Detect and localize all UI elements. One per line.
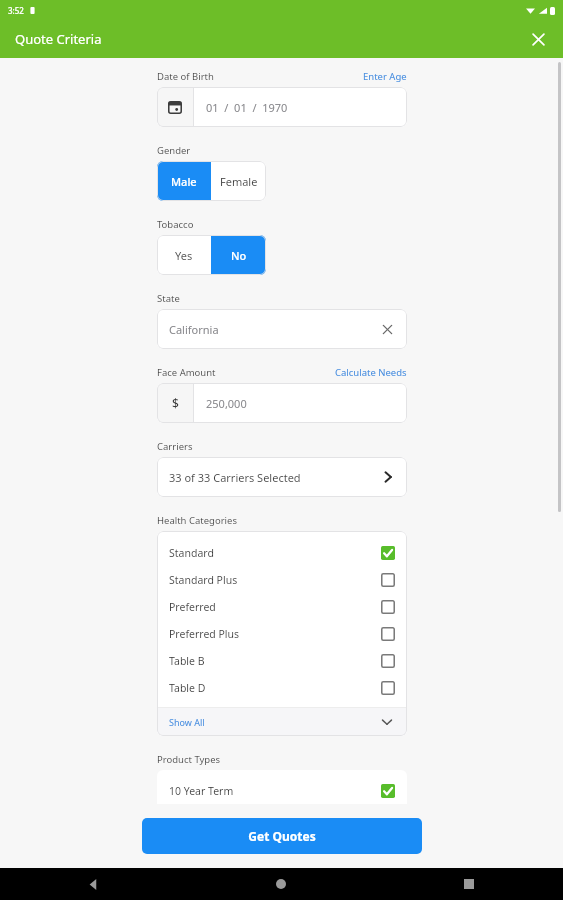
- button[interactable]: Home: [187, 868, 375, 900]
- button[interactable]: Back: [0, 868, 187, 900]
- staticText: Standard: [169, 546, 214, 560]
- staticText: $: [172, 395, 179, 411]
- staticText: Preferred Plus: [169, 627, 240, 641]
- button[interactable]: 33 of 33 Carriers Selected: [157, 457, 407, 497]
- staticText: Product Types: [157, 753, 221, 766]
- staticText: Male: [171, 174, 197, 189]
- staticText: Calculate Needs: [335, 366, 407, 379]
- button[interactable]: Standard: [157, 539, 407, 566]
- staticText: Quote Criteria: [15, 30, 102, 48]
- staticText: Table D: [169, 681, 206, 695]
- staticText: Yes: [175, 248, 193, 263]
- staticText: Date of Birth: [157, 70, 214, 83]
- staticText: Female: [220, 174, 258, 189]
- staticText: Gender: [157, 144, 191, 157]
- staticText: No: [231, 248, 247, 263]
- staticText: Enter Age: [363, 70, 407, 83]
- button[interactable]: No: [211, 235, 266, 275]
- staticText: Carriers: [157, 440, 193, 453]
- staticText: Preferred: [169, 600, 216, 614]
- button[interactable]: Close: [525, 26, 551, 52]
- button[interactable]: Standard Plus: [157, 566, 407, 593]
- button[interactable]: Calculate Needs: [335, 366, 407, 379]
- button[interactable]: Male: [157, 161, 211, 201]
- button[interactable]: Preferred: [157, 593, 407, 620]
- staticText: 33 of 33 Carriers Selected: [169, 470, 301, 485]
- staticText: Show All: [169, 716, 205, 728]
- button[interactable]: Get Quotes: [142, 818, 422, 854]
- staticText: Health Categories: [157, 514, 237, 527]
- button[interactable]: Enter Age: [363, 70, 407, 83]
- staticText: 01 / 01 / 1970: [206, 100, 288, 115]
- button[interactable]: Clear state: [377, 319, 397, 339]
- staticText: 3:52: [8, 5, 24, 16]
- staticText: Standard Plus: [169, 573, 238, 587]
- button[interactable]: Table B: [157, 647, 407, 674]
- staticText: State: [157, 292, 180, 305]
- button[interactable]: Show All: [157, 708, 407, 736]
- staticText: 10 Year Term: [169, 784, 234, 798]
- staticText: California: [169, 322, 219, 337]
- staticText: Face Amount: [157, 366, 216, 379]
- button[interactable]: 10 Year Term: [157, 778, 407, 804]
- button[interactable]: Table D: [157, 674, 407, 701]
- button[interactable]: Yes: [157, 235, 211, 275]
- staticText: Get Quotes: [248, 828, 316, 844]
- staticText: 250,000: [206, 396, 247, 411]
- button[interactable]: Female: [211, 161, 266, 201]
- button[interactable]: Recent apps: [375, 868, 563, 900]
- button[interactable]: Preferred Plus: [157, 620, 407, 647]
- staticText: Tobacco: [157, 218, 194, 231]
- staticText: Table B: [169, 654, 205, 668]
